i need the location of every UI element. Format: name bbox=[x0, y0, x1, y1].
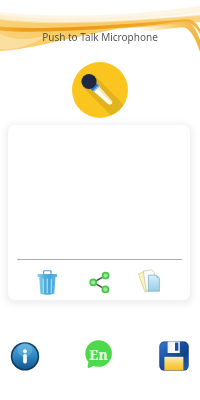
button[interactable]: Share bbox=[85, 267, 114, 296]
button[interactable]: Copy bbox=[136, 266, 167, 297]
button[interactable]: Push to talk microphone bbox=[72, 62, 128, 118]
staticText: En bbox=[83, 345, 114, 364]
button[interactable]: Language English bbox=[84, 341, 115, 372]
staticText: Push to Talk Microphone bbox=[0, 30, 200, 44]
button[interactable]: Delete bbox=[32, 267, 61, 296]
button[interactable]: Info bbox=[10, 341, 40, 371]
button[interactable]: Save bbox=[159, 341, 189, 371]
button[interactable]: Delete bbox=[8, 125, 190, 300]
